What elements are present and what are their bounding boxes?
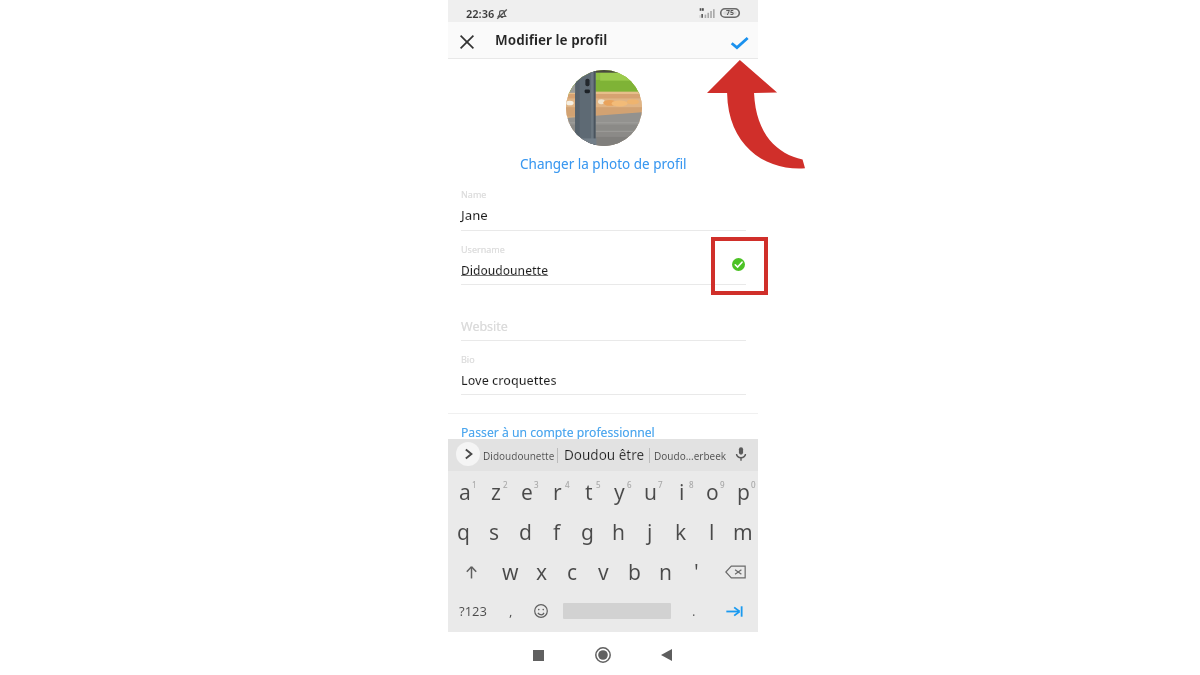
button[interactable]: j bbox=[634, 517, 665, 547]
staticText: x bbox=[536, 558, 548, 587]
button[interactable]: Save bbox=[724, 27, 755, 58]
button[interactable]: Changer la photo de profil bbox=[520, 155, 687, 173]
button[interactable]: Next field bbox=[711, 597, 758, 625]
button[interactable]: Home bbox=[588, 640, 618, 670]
button[interactable]: q bbox=[448, 517, 479, 547]
button[interactable]: f bbox=[541, 517, 572, 547]
staticText: i bbox=[679, 478, 685, 507]
button[interactable]: s bbox=[479, 517, 510, 547]
staticText: 5 bbox=[596, 479, 601, 490]
staticText: e bbox=[521, 478, 533, 507]
button[interactable]: Emoji bbox=[524, 597, 558, 625]
button[interactable]: r bbox=[541, 477, 572, 507]
staticText: 22:36 bbox=[466, 6, 495, 21]
staticText: 3 bbox=[534, 479, 539, 490]
button[interactable]: o bbox=[696, 477, 727, 507]
button[interactable]: v bbox=[588, 557, 619, 587]
staticText: s bbox=[489, 518, 500, 547]
staticText: Bio bbox=[461, 353, 475, 365]
button[interactable]: Doudo…erbeek bbox=[654, 449, 727, 463]
button[interactable]: , bbox=[497, 597, 524, 625]
staticText: 8 bbox=[689, 479, 694, 490]
button[interactable]: b bbox=[619, 557, 650, 587]
button[interactable]: u bbox=[634, 477, 665, 507]
button[interactable]: Name field, Jane bbox=[461, 185, 746, 231]
button[interactable]: Didoudounette bbox=[483, 449, 555, 463]
button[interactable]: z bbox=[479, 477, 510, 507]
button[interactable] bbox=[558, 597, 676, 625]
button[interactable]: Profile photo bbox=[566, 70, 642, 146]
staticText: Love croquettes bbox=[461, 372, 557, 389]
button[interactable]: w bbox=[495, 557, 526, 587]
staticText: 75 bbox=[726, 8, 735, 18]
staticText: r bbox=[553, 478, 562, 507]
button[interactable]: l bbox=[696, 517, 727, 547]
staticText: Didoudounette bbox=[461, 262, 549, 278]
staticText: . bbox=[692, 602, 696, 620]
staticText: 2 bbox=[503, 479, 508, 490]
staticText: 7 bbox=[658, 479, 663, 490]
staticText: ?123 bbox=[459, 602, 487, 620]
button[interactable]: Website field bbox=[461, 300, 746, 341]
staticText: Passer à un compte professionnel bbox=[461, 424, 655, 441]
staticText: 0 bbox=[751, 479, 756, 490]
button[interactable]: k bbox=[665, 517, 696, 547]
staticText: 9 bbox=[720, 479, 725, 490]
button[interactable]: Passer à un compte professionnel bbox=[448, 416, 758, 440]
staticText: u bbox=[644, 478, 657, 507]
staticText: l bbox=[709, 518, 715, 547]
staticText: p bbox=[737, 478, 750, 507]
button[interactable]: c bbox=[557, 557, 588, 587]
button[interactable]: t bbox=[572, 477, 603, 507]
button[interactable]: x bbox=[526, 557, 557, 587]
button[interactable]: Voice input bbox=[733, 446, 749, 462]
staticText: h bbox=[612, 518, 625, 547]
button[interactable]: ?123 bbox=[448, 597, 497, 625]
button[interactable]: h bbox=[603, 517, 634, 547]
button[interactable]: d bbox=[510, 517, 541, 547]
button[interactable]: ' bbox=[681, 557, 712, 587]
button[interactable]: e bbox=[510, 477, 541, 507]
button[interactable]: Back bbox=[651, 640, 681, 670]
button[interactable]: Doudou être bbox=[564, 446, 645, 464]
staticText: 6 bbox=[627, 479, 632, 490]
staticText: Jane bbox=[461, 206, 488, 224]
staticText: g bbox=[581, 518, 594, 547]
staticText: f bbox=[553, 518, 561, 547]
button[interactable]: p bbox=[727, 477, 758, 507]
button[interactable]: m bbox=[727, 517, 758, 547]
button[interactable]: Bio field, Love croquettes bbox=[461, 350, 746, 395]
button[interactable]: . bbox=[676, 597, 711, 625]
staticText: j bbox=[647, 518, 653, 547]
button[interactable]: Shift bbox=[448, 557, 495, 587]
staticText: t bbox=[585, 478, 593, 507]
button[interactable]: More suggestions bbox=[456, 442, 480, 466]
staticText: m bbox=[733, 518, 753, 547]
staticText: Website bbox=[461, 318, 508, 335]
button[interactable]: Username field, Didoudounette bbox=[461, 240, 746, 286]
staticText: k bbox=[675, 518, 687, 547]
staticText: q bbox=[457, 518, 470, 547]
other: Username available bbox=[732, 258, 745, 271]
button[interactable]: a bbox=[448, 477, 479, 507]
staticText: v bbox=[598, 558, 609, 587]
staticText: b bbox=[628, 558, 641, 587]
button[interactable]: i bbox=[665, 477, 696, 507]
staticText: y bbox=[614, 478, 625, 507]
staticText: n bbox=[659, 558, 672, 587]
staticText: , bbox=[509, 602, 513, 620]
staticText: a bbox=[459, 478, 471, 507]
staticText: 1 bbox=[472, 479, 477, 490]
staticText: ' bbox=[694, 558, 699, 587]
button[interactable]: g bbox=[572, 517, 603, 547]
button[interactable]: n bbox=[650, 557, 681, 587]
button[interactable]: y bbox=[603, 477, 634, 507]
staticText: d bbox=[519, 518, 532, 547]
button[interactable]: Recents bbox=[523, 640, 553, 670]
staticText: z bbox=[491, 478, 501, 507]
button[interactable]: Backspace bbox=[712, 557, 758, 587]
staticText: o bbox=[706, 478, 719, 507]
staticText: w bbox=[502, 558, 519, 587]
button[interactable]: Close bbox=[451, 26, 482, 57]
staticText: c bbox=[567, 558, 578, 587]
